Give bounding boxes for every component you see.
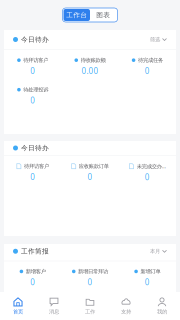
staticText: 本月 — [150, 248, 160, 255]
staticText: 待拜访客户 — [23, 57, 48, 63]
button[interactable]: 工作 — [72, 292, 108, 320]
staticText: 工作 — [85, 308, 95, 315]
staticText: 0 — [30, 95, 35, 106]
button[interactable]: 首页 — [0, 292, 36, 320]
button[interactable]: 待拜访客户 — [4, 160, 61, 184]
staticText: 0 — [145, 172, 150, 182]
button[interactable]: 支持 — [108, 292, 144, 320]
staticText: 今日待办 — [21, 144, 49, 152]
staticText: 未完成交办… — [137, 163, 166, 170]
staticText: 新增日常拜访 — [78, 268, 108, 275]
button[interactable]: 本月 — [144, 245, 167, 258]
staticText: 0.00 — [81, 65, 98, 76]
staticText: 图表 — [96, 11, 110, 19]
staticText: 我的 — [157, 308, 167, 315]
staticText: 待拜访客户 — [24, 163, 49, 169]
button[interactable]: 工作台 — [63, 9, 90, 21]
button[interactable]: 应收账款订单 — [61, 160, 119, 184]
staticText: 0 — [30, 277, 35, 287]
staticText: 工作简报 — [21, 247, 49, 255]
button[interactable]: 新增订单 — [119, 266, 176, 290]
button[interactable]: 消息 — [36, 292, 72, 320]
button[interactable]: 待完成任务 — [119, 54, 176, 78]
button[interactable]: 我的 — [144, 292, 180, 320]
staticText: 0 — [145, 277, 150, 287]
staticText: 0 — [87, 171, 92, 182]
staticText: 新增客户 — [26, 268, 46, 275]
staticText: 待收账款额 — [80, 57, 105, 63]
staticText: 新增订单 — [140, 268, 160, 275]
staticText: 0 — [87, 277, 92, 287]
button[interactable]: 待处理投诉 — [4, 84, 61, 108]
staticText: 0 — [30, 65, 35, 76]
staticText: 消息 — [49, 308, 59, 315]
button[interactable]: 未完成交办… — [119, 160, 176, 184]
staticText: 0 — [30, 171, 35, 182]
staticText: 首页 — [13, 308, 23, 315]
staticText: 支持 — [121, 308, 131, 315]
button[interactable]: 筛选 — [144, 33, 167, 46]
staticText: 工作台 — [66, 11, 87, 19]
staticText: 应收账款订单 — [79, 163, 109, 169]
staticText: 今日待办 — [21, 35, 49, 44]
staticText: 筛选 — [150, 36, 160, 43]
button[interactable]: 待收账款额 — [61, 54, 119, 78]
staticText: 0 — [145, 65, 150, 76]
button[interactable]: 新增客户 — [4, 266, 61, 290]
button[interactable]: 新增日常拜访 — [61, 266, 119, 290]
button[interactable]: 待拜访客户 — [4, 54, 61, 78]
staticText: 待完成任务 — [138, 57, 163, 63]
staticText: 待处理投诉 — [23, 86, 48, 93]
button[interactable]: 图表 — [90, 9, 116, 21]
